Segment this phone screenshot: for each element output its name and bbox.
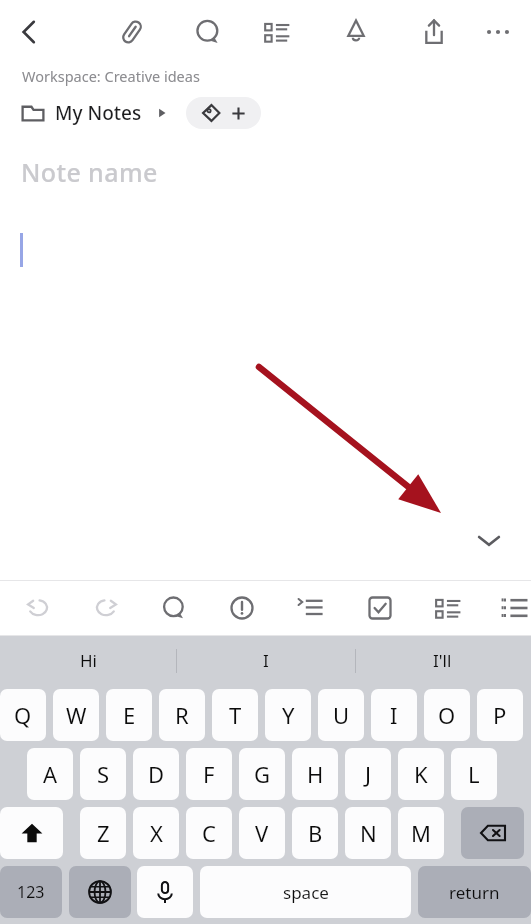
button[interactable]: Checklist	[352, 588, 408, 628]
button[interactable]: S	[80, 748, 126, 800]
button[interactable]: space	[200, 866, 411, 918]
button[interactable]: Y	[265, 689, 311, 741]
button[interactable]: C	[186, 807, 232, 859]
button[interactable]: F	[186, 748, 232, 800]
button[interactable]: Hide keyboard	[467, 518, 511, 562]
button[interactable]: Checklist view	[249, 8, 305, 56]
button[interactable]: Z	[80, 807, 126, 859]
staticText: E	[123, 700, 136, 730]
button[interactable]: Indent list	[282, 588, 338, 628]
button[interactable]: B	[292, 807, 338, 859]
staticText: Workspace: Creative ideas	[22, 66, 200, 86]
button[interactable]: J	[345, 748, 391, 800]
staticText: D	[148, 759, 165, 789]
button[interactable]: U	[318, 689, 364, 741]
staticText: F	[203, 759, 215, 789]
button[interactable]: Shift	[0, 807, 63, 859]
staticText: I	[263, 649, 269, 672]
button[interactable]: I'll	[354, 636, 531, 685]
staticText: B	[308, 818, 323, 848]
staticText: return	[449, 881, 500, 904]
button[interactable]: O	[424, 689, 470, 741]
staticText: I'll	[433, 649, 452, 672]
button[interactable]: A	[27, 748, 73, 800]
button[interactable]: H	[292, 748, 338, 800]
staticText: G	[254, 759, 271, 789]
staticText: T	[229, 700, 242, 730]
button[interactable]: G	[239, 748, 285, 800]
staticText: Y	[282, 700, 295, 730]
staticText: X	[150, 818, 163, 848]
button[interactable]: Back	[2, 8, 58, 56]
button[interactable]: Voice input	[137, 866, 193, 918]
button[interactable]: I	[371, 689, 417, 741]
button[interactable]: Hi	[0, 636, 177, 685]
button[interactable]: Comments	[180, 8, 236, 56]
button[interactable]: Undo	[10, 588, 66, 628]
staticText: Q	[14, 700, 32, 730]
button[interactable]: Share	[406, 8, 462, 56]
button[interactable]: Numbered list	[486, 588, 531, 628]
staticText: L	[468, 759, 480, 789]
staticText: Note name	[21, 155, 158, 189]
button[interactable]: L	[451, 748, 497, 800]
staticText: K	[414, 759, 428, 789]
button[interactable]: Change language	[69, 866, 131, 918]
button[interactable]: return	[418, 866, 531, 918]
button[interactable]: Redo	[78, 588, 134, 628]
staticText: My Notes	[55, 100, 142, 126]
staticText: H	[307, 759, 324, 789]
button[interactable]: W	[53, 689, 99, 741]
button[interactable]: Backspace	[461, 807, 524, 859]
button[interactable]: I	[177, 636, 354, 685]
staticText: S	[97, 759, 110, 789]
button[interactable]: R	[159, 689, 205, 741]
button[interactable]: P	[477, 689, 523, 741]
button[interactable]: N	[345, 807, 391, 859]
button[interactable]: K	[398, 748, 444, 800]
button[interactable]: M	[398, 807, 444, 859]
button[interactable]: X	[133, 807, 179, 859]
staticText: M	[411, 818, 431, 848]
button[interactable]: Q	[0, 689, 46, 741]
button[interactable]: Add tag	[186, 97, 261, 129]
button[interactable]: Attach file	[104, 8, 160, 56]
staticText: U	[333, 700, 350, 730]
button[interactable]: More options	[470, 8, 526, 56]
staticText: A	[43, 759, 58, 789]
button[interactable]: V	[239, 807, 285, 859]
button[interactable]: D	[133, 748, 179, 800]
staticText: R	[175, 700, 189, 730]
staticText: C	[202, 818, 216, 848]
staticText: O	[438, 700, 456, 730]
button[interactable]: Bulleted list	[420, 588, 476, 628]
button[interactable]: My Notes	[20, 100, 174, 126]
staticText: J	[365, 759, 372, 789]
button[interactable]: T	[212, 689, 258, 741]
staticText: P	[493, 700, 507, 730]
staticText: 123	[17, 881, 45, 903]
staticText: N	[360, 818, 377, 848]
button[interactable]: E	[106, 689, 152, 741]
staticText: V	[255, 818, 269, 848]
button[interactable]: Callout	[214, 588, 270, 628]
staticText: Z	[97, 818, 110, 848]
staticText: space	[283, 881, 329, 904]
button[interactable]: Comment	[146, 588, 202, 628]
staticText: W	[66, 700, 87, 730]
staticText: I	[390, 700, 398, 730]
button[interactable]: Reminders	[328, 8, 384, 56]
button[interactable]: 123	[0, 866, 62, 918]
staticText: Hi	[80, 649, 97, 672]
